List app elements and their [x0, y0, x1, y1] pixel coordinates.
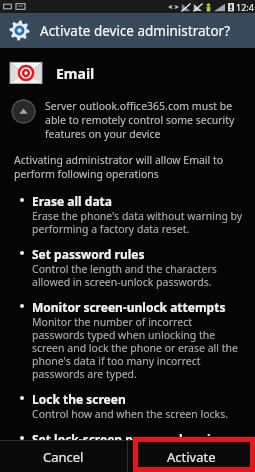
- staticText: Set password rules: [32, 246, 145, 262]
- staticText: Erase the phone's data without warning b…: [32, 209, 245, 236]
- staticText: Email: [56, 64, 95, 83]
- button[interactable]: Cancel: [0, 441, 127, 472]
- staticText: Erase all data: [32, 193, 112, 209]
- staticText: Activate: [167, 448, 216, 466]
- button[interactable]: Activate: [128, 441, 255, 472]
- staticText: Control the length and the characters al…: [32, 262, 245, 289]
- button[interactable]: Collapse description: [11, 99, 36, 124]
- staticText: Set lock-screen password expiry: [32, 431, 223, 440]
- staticText: Activate device administrator?: [40, 22, 230, 40]
- staticText: Server outlook.office365.com must be abl…: [45, 99, 247, 141]
- staticText: Monitor the number of incorrect password…: [32, 315, 245, 381]
- staticText: Lock the screen: [32, 391, 126, 407]
- staticText: 12:4: [236, 1, 254, 13]
- staticText: Control how and when the screen locks.: [32, 407, 228, 421]
- staticText: Monitor screen-unlock attempts: [32, 299, 226, 315]
- staticText: Cancel: [43, 448, 84, 466]
- staticText: Activating administrator will allow Emai…: [14, 153, 239, 181]
